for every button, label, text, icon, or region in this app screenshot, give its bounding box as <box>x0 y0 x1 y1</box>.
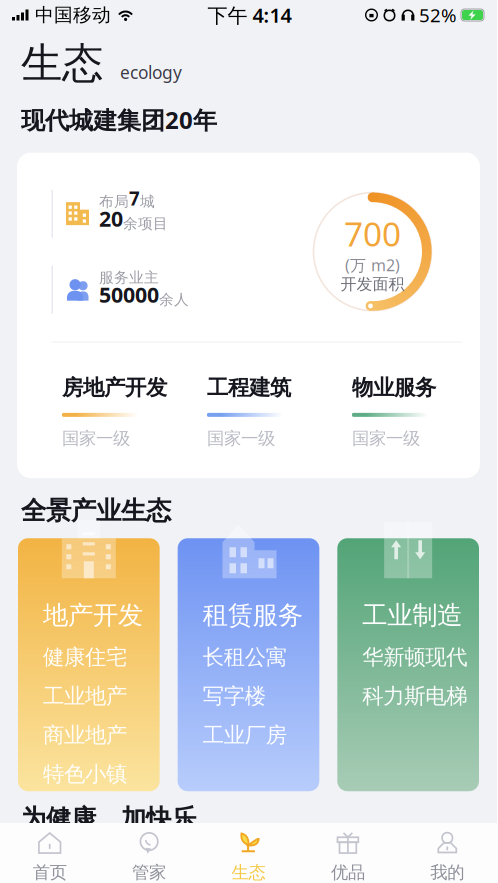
staticText: 首页 <box>33 862 67 883</box>
staticText: 城 <box>140 193 155 211</box>
staticText: 服务业主 <box>99 269 159 287</box>
staticText: 管家 <box>132 862 166 883</box>
staticText: 国家一级 <box>62 428 130 449</box>
button[interactable]: 首页 <box>0 823 99 883</box>
button[interactable]: 生态 <box>199 823 298 883</box>
staticText: 特色小镇 <box>43 761 127 787</box>
button[interactable]: 我的 <box>398 823 497 883</box>
staticText: 长租公寓 <box>203 644 287 670</box>
staticText: 地产开发 <box>43 600 143 631</box>
button[interactable]: 地产开发 <box>18 538 160 791</box>
staticText: 工业地产 <box>43 683 127 709</box>
staticText: 我的 <box>430 862 464 883</box>
staticText: 科力斯电梯 <box>362 683 467 709</box>
staticText: 写字楼 <box>203 683 266 709</box>
staticText: 余人 <box>159 291 189 309</box>
staticText: 52% <box>419 3 457 27</box>
staticText: 工业制造 <box>362 600 462 631</box>
button[interactable]: 租赁服务 <box>178 538 319 791</box>
staticText: 华新顿现代 <box>362 644 467 670</box>
staticText: 中国移动 <box>35 3 111 26</box>
staticText: 现代城建集团20年 <box>21 104 217 136</box>
staticText: 7 <box>129 186 140 211</box>
staticText: 生态 <box>231 862 265 883</box>
staticText: 下午 4:14 <box>207 2 291 28</box>
staticText: 健康住宅 <box>43 644 127 670</box>
button[interactable]: 优品 <box>298 823 398 883</box>
staticText: 物业服务 <box>352 375 436 401</box>
staticText: 工业厂房 <box>203 722 287 748</box>
staticText: 余项目 <box>123 215 168 233</box>
staticText: 租赁服务 <box>203 600 303 631</box>
staticText: (万 m2) <box>345 254 400 276</box>
staticText: 商业地产 <box>43 722 127 748</box>
staticText: 国家一级 <box>352 428 420 449</box>
staticText: 700 <box>344 211 401 256</box>
staticText: 为健康，加快乐 <box>21 803 196 834</box>
staticText: 全景产业生态 <box>21 495 171 526</box>
staticText: 布局 <box>99 193 129 211</box>
staticText: 20 <box>99 204 123 233</box>
button[interactable]: 工业制造 <box>337 538 479 791</box>
staticText: 工程建筑 <box>207 375 291 401</box>
button[interactable]: 管家 <box>99 823 199 883</box>
staticText: 优品 <box>331 862 365 883</box>
staticText: 开发面积 <box>340 274 404 294</box>
staticText: 房地产开发 <box>62 375 167 401</box>
staticText: ecology <box>120 61 182 84</box>
staticText: 生态 <box>21 38 103 89</box>
staticText: 国家一级 <box>207 428 275 449</box>
staticText: 50000 <box>99 280 159 309</box>
